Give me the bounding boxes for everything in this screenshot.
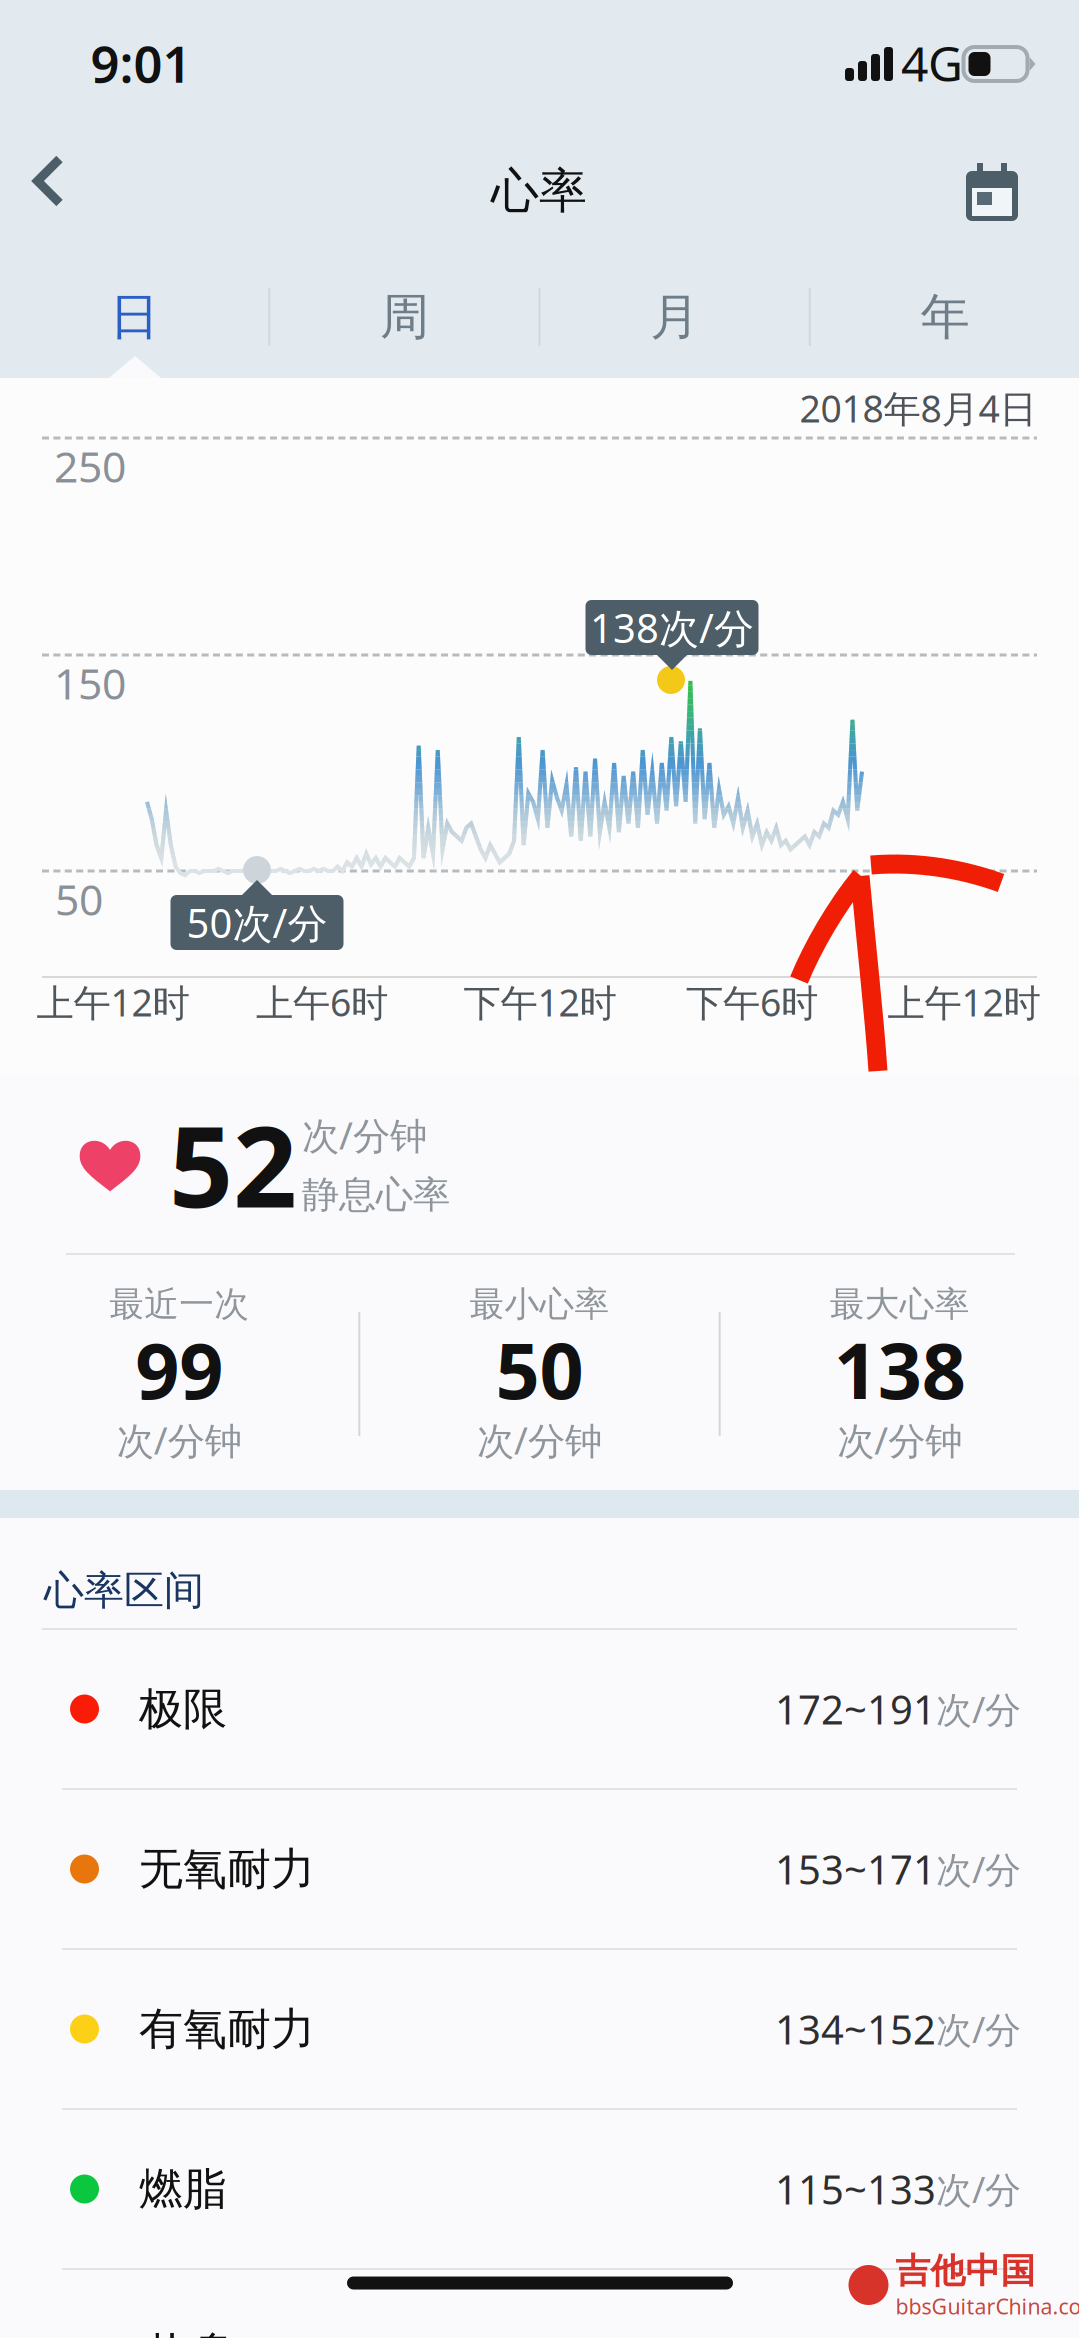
button[interactable]: 燃脂: [0, 2110, 1079, 2268]
staticText: 50次/分: [186, 896, 327, 949]
button[interactable]: 月: [540, 251, 809, 383]
staticText: 52: [169, 1090, 297, 1238]
staticText: 9:01: [90, 29, 191, 97]
staticText: 次/分: [936, 2005, 1021, 2053]
staticText: 50: [495, 1318, 583, 1420]
staticText: 50: [55, 871, 103, 927]
staticText: 2018年8月4日: [799, 383, 1036, 433]
staticText: 次/分: [936, 2165, 1021, 2213]
staticText: 次/分钟: [477, 1415, 602, 1465]
button[interactable]: 极限: [0, 1630, 1079, 1788]
staticText: 心率区间: [44, 1566, 204, 1615]
staticText: 下午6时: [686, 977, 818, 1027]
staticText: 最小心率: [469, 1283, 609, 1326]
staticText: 无氧耐力: [139, 1842, 315, 1896]
staticText: 115~133: [775, 2162, 936, 2215]
staticText: 138: [834, 1318, 966, 1420]
staticText: 上午12时: [887, 977, 1040, 1027]
staticText: 250: [54, 438, 126, 494]
staticText: 最大心率: [830, 1283, 970, 1326]
staticText: 有氧耐力: [139, 2002, 315, 2056]
staticText: 4G: [901, 31, 963, 95]
staticText: 下午12时: [463, 977, 616, 1027]
staticText: 153~171: [775, 1842, 936, 1895]
button[interactable]: Back: [1, 124, 98, 238]
button[interactable]: 有氧耐力: [0, 1950, 1079, 2108]
staticText: 周: [380, 287, 429, 347]
button[interactable]: 年: [811, 251, 1079, 383]
staticText: 最近一次: [109, 1283, 249, 1326]
staticText: 上午12时: [36, 977, 189, 1027]
staticText: 日: [110, 287, 159, 347]
staticText: 99: [135, 1318, 223, 1420]
button[interactable]: Calendar: [934, 133, 1050, 251]
staticText: 次/分钟: [117, 1415, 242, 1465]
button[interactable]: 日: [0, 251, 268, 383]
staticText: 150: [54, 655, 126, 711]
staticText: 燃脂: [139, 2162, 227, 2216]
staticText: 172~191: [775, 1682, 936, 1735]
staticText: bbsGuitarChina.com: [895, 2292, 1079, 2320]
staticText: 心率: [491, 161, 587, 220]
staticText: 上午6时: [256, 977, 388, 1027]
staticText: 吉他中国: [895, 2249, 1035, 2292]
staticText: 次/分钟: [302, 1110, 427, 1160]
staticText: 138次/分: [590, 601, 754, 654]
button[interactable]: 无氧耐力: [0, 1790, 1079, 1948]
staticText: 静息心率: [302, 1172, 450, 1218]
staticText: 次/分钟: [837, 1415, 962, 1465]
staticText: 月: [650, 287, 699, 347]
button[interactable]: 周: [270, 251, 538, 383]
staticText: 年: [920, 287, 969, 347]
staticText: 极限: [139, 1682, 227, 1736]
staticText: 热身: [146, 2326, 236, 2338]
staticText: 134~152: [775, 2002, 936, 2055]
staticText: 次/分: [936, 1845, 1021, 1893]
staticText: 次/分: [936, 1685, 1021, 1733]
